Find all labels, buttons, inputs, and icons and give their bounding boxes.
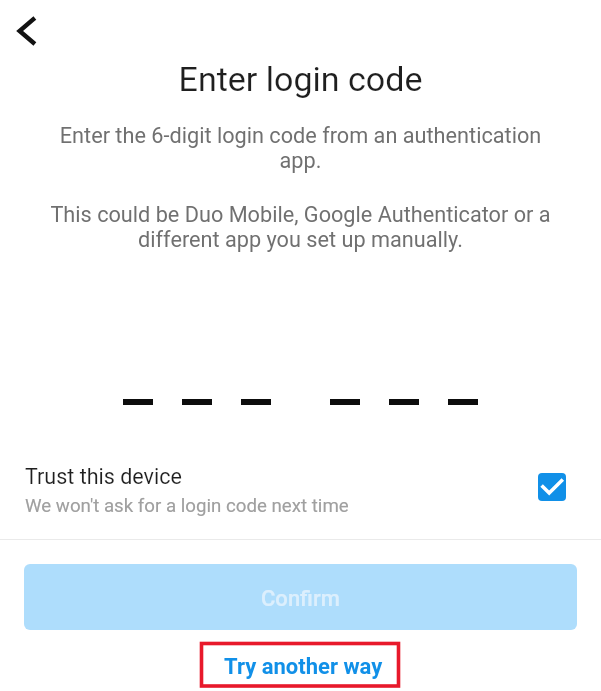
staticText: We won't ask for a login code next time bbox=[25, 495, 349, 517]
button[interactable]: Trust this device, checked bbox=[538, 473, 566, 501]
staticText: Enter the 6-digit login code from an aut… bbox=[40, 123, 561, 173]
button[interactable]: Trust this device bbox=[25, 464, 576, 517]
button[interactable]: Back bbox=[0, 0, 52, 52]
staticText: Try another way bbox=[224, 654, 383, 680]
staticText: Enter login code bbox=[0, 59, 601, 99]
staticText: Confirm bbox=[261, 586, 340, 612]
button[interactable]: Try another way bbox=[208, 644, 395, 686]
staticText: This could be Duo Mobile, Google Authent… bbox=[24, 202, 577, 252]
staticText: Trust this device bbox=[25, 464, 182, 489]
button[interactable]: Confirm bbox=[24, 564, 577, 630]
